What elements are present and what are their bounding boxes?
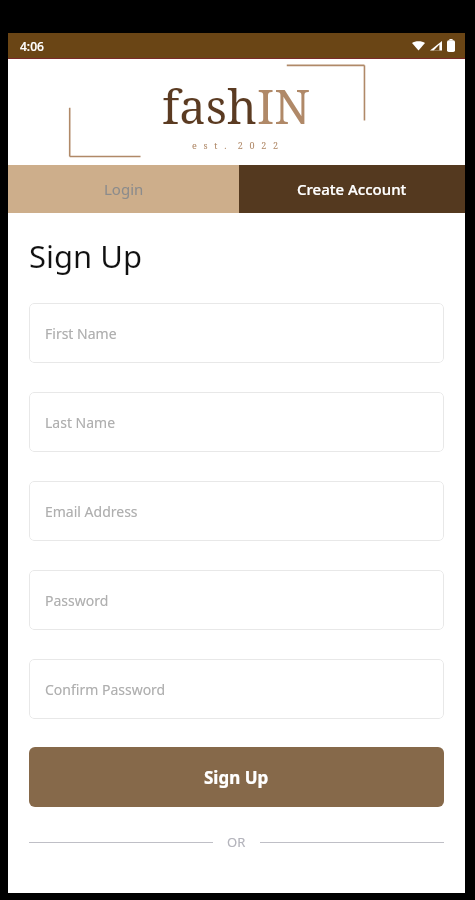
staticText: Sign Up bbox=[29, 235, 143, 277]
staticText: Last Name bbox=[45, 413, 116, 432]
button[interactable]: Last Name bbox=[29, 392, 444, 452]
staticText: Sign Up bbox=[204, 766, 269, 789]
button[interactable]: Password bbox=[29, 570, 444, 630]
staticText: First Name bbox=[45, 324, 117, 343]
staticText: fash bbox=[162, 74, 257, 138]
button[interactable]: Create Account bbox=[239, 165, 465, 213]
staticText: Email Address bbox=[45, 502, 138, 521]
staticText: e s t . 2 0 2 2 bbox=[192, 139, 281, 151]
staticText: OR bbox=[227, 833, 246, 851]
staticText: Password bbox=[45, 591, 109, 610]
staticText: Confirm Password bbox=[45, 680, 166, 699]
staticText: 4:06 bbox=[20, 38, 44, 54]
button[interactable]: Login bbox=[8, 165, 239, 213]
staticText: Create Account bbox=[297, 179, 407, 199]
staticText: IN bbox=[257, 74, 311, 138]
button[interactable]: First Name bbox=[29, 303, 444, 363]
button[interactable]: Sign Up bbox=[29, 747, 444, 807]
button[interactable]: Email Address bbox=[29, 481, 444, 541]
staticText: Login bbox=[104, 179, 144, 199]
button[interactable]: Confirm Password bbox=[29, 659, 444, 719]
